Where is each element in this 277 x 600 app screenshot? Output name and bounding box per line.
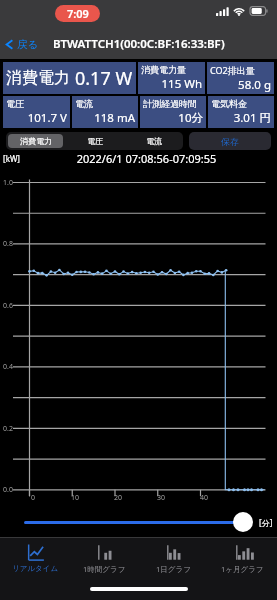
staticText: 消費電力 (6, 68, 70, 88)
staticText: 115 Wh (141, 76, 202, 92)
staticText: 101.7 V (6, 110, 67, 126)
staticText: 1.0 (3, 178, 13, 188)
staticText: 7:09 (67, 6, 89, 21)
staticText: 電圧 (6, 98, 24, 109)
staticText: 58.0 g (210, 77, 271, 93)
staticText: BTWATTCH1(00:0C:BF:16:33:BF) (53, 36, 225, 52)
staticText: 0.4 (3, 362, 13, 372)
staticText: [kW] (3, 153, 20, 164)
staticText: 電気料金 (211, 98, 247, 109)
staticText: 計測経過時間 (143, 98, 197, 109)
staticText: 戻る (17, 38, 39, 51)
staticText: 0.2 (3, 424, 13, 434)
button[interactable]: 電圧 (67, 134, 122, 148)
staticText: 1ヶ月グラフ (221, 564, 264, 574)
staticText: 10分 (143, 110, 203, 126)
button[interactable]: 1時間グラフ (70, 538, 139, 578)
staticText: 電流 (75, 98, 93, 109)
staticText: 40 (196, 493, 212, 503)
staticText: 118 mA (75, 110, 135, 126)
button[interactable]: Time slider (233, 512, 253, 532)
staticText: リアルタイム (12, 564, 59, 573)
staticText: 0.8 (3, 239, 13, 249)
staticText: 30 (153, 493, 169, 503)
button[interactable]: 1日グラフ (139, 538, 208, 578)
staticText: 電流 (146, 136, 162, 146)
staticText: 2022/6/1 07:08:56-07:09:55 (8, 151, 277, 166)
staticText: 電圧 (87, 136, 103, 146)
staticText: 0.0 (3, 485, 13, 495)
staticText: 0.17 W (75, 66, 133, 91)
button[interactable]: 1ヶ月グラフ (208, 538, 277, 578)
staticText: 20 (110, 493, 126, 503)
staticText: 保存 (221, 136, 239, 147)
staticText: [分] (259, 517, 273, 528)
button[interactable]: 戻る (0, 35, 45, 54)
button[interactable]: 消費電力 (8, 134, 63, 148)
staticText: 消費電力量 (141, 64, 186, 75)
staticText: 1日グラフ (156, 564, 191, 574)
staticText: 3.01 円 (211, 110, 271, 126)
button[interactable]: 保存 (189, 132, 271, 150)
button[interactable]: 電流 (126, 134, 181, 148)
staticText: 0.6 (3, 301, 13, 311)
button[interactable]: リアルタイム (0, 538, 70, 578)
staticText: 消費電力 (20, 136, 52, 146)
staticText: CO2排出量 (210, 64, 255, 76)
staticText: 1時間グラフ (83, 564, 126, 574)
staticText: 10 (67, 493, 83, 503)
staticText: 0 (25, 493, 41, 503)
